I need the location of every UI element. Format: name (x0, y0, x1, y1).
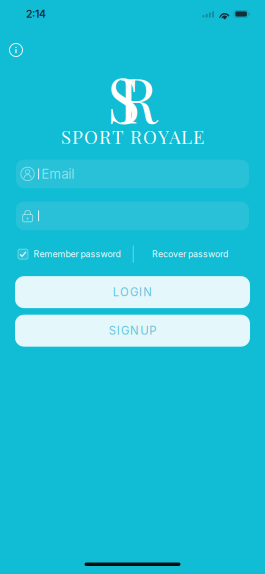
staticText: R (118, 57, 158, 139)
staticText: 2:14 (26, 8, 46, 20)
button[interactable]: Information (3, 33, 29, 57)
staticText: Email (41, 166, 74, 182)
button[interactable]: Remember password (16, 244, 120, 264)
button[interactable]: Recover password (152, 244, 249, 264)
staticText: S (107, 57, 140, 139)
button[interactable]: LOGIN (15, 276, 250, 308)
staticText: Recover password (152, 249, 228, 259)
staticText: LOGIN (113, 285, 152, 299)
button[interactable] (16, 202, 249, 230)
button[interactable]: Email (16, 160, 249, 188)
staticText: SIGNUP (109, 324, 156, 337)
staticText: SPORT ROYALE (61, 124, 204, 149)
button[interactable]: SIGNUP (15, 315, 250, 347)
staticText: Remember password (33, 249, 120, 259)
